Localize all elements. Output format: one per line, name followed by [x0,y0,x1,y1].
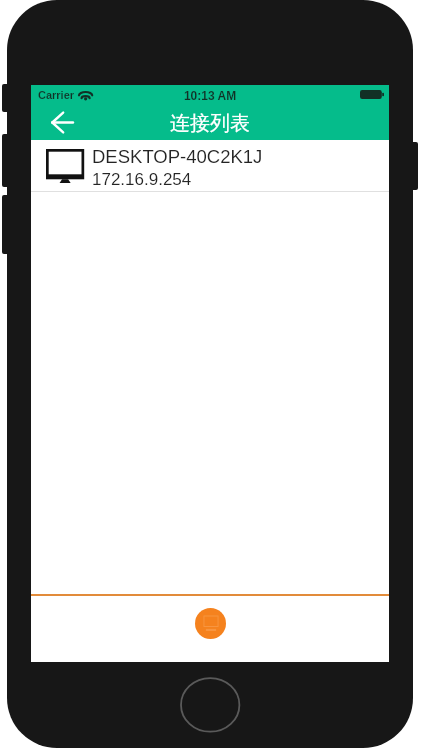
staticText: Carrier [38,89,75,101]
staticText: DESKTOP-40C2K1J [92,146,263,167]
staticText: 10:13 AM [31,89,389,102]
button[interactable]: Back [44,104,81,140]
button[interactable]: DESKTOP-40C2K1J [31,140,389,190]
button[interactable]: Add connection [195,608,226,639]
staticText: 172.16.9.254 [92,170,192,189]
staticText: 连接列表 [31,111,389,136]
